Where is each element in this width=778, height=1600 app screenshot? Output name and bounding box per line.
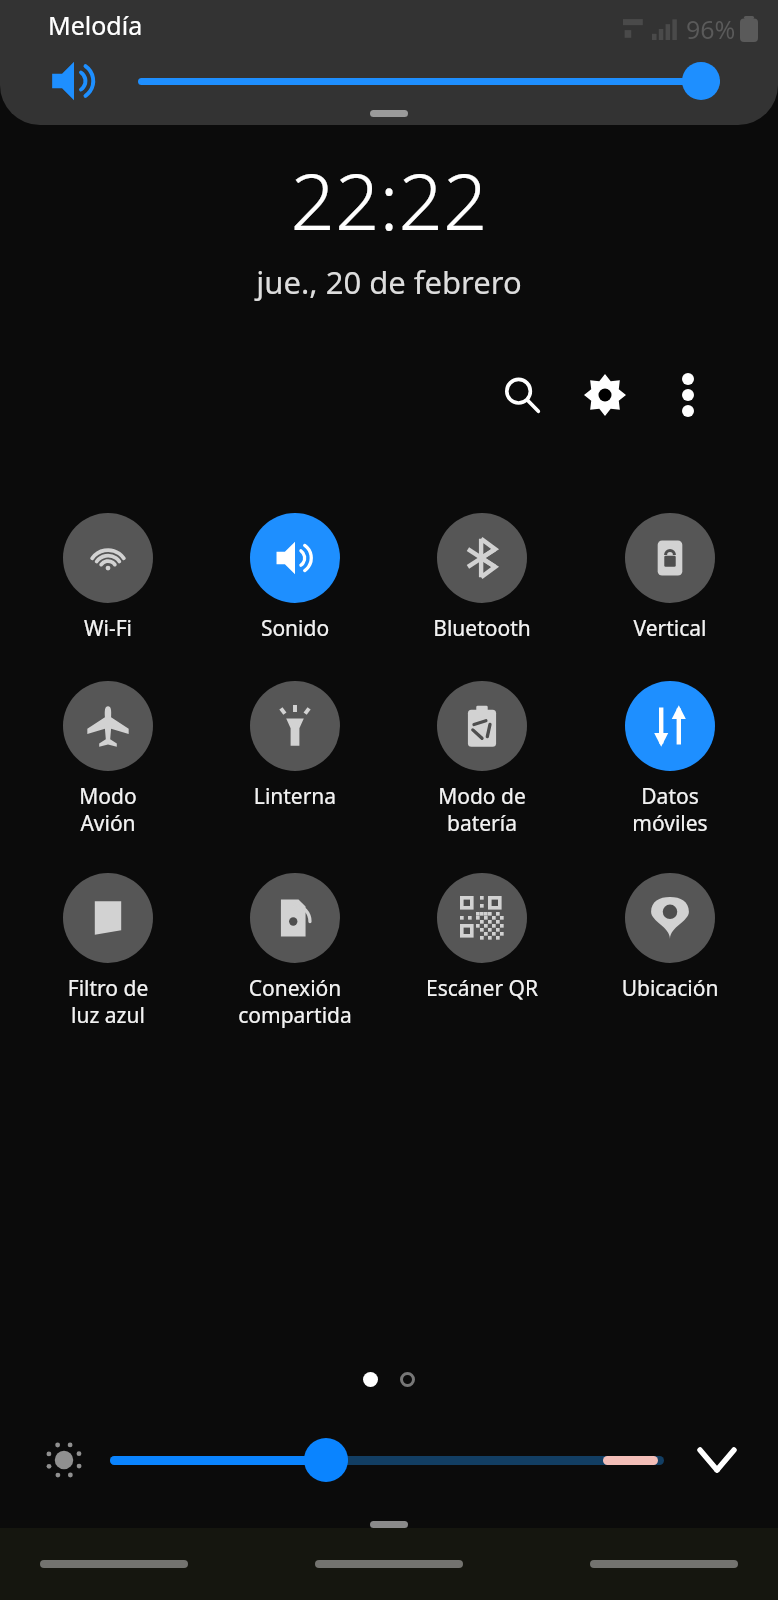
button[interactable]: Bluetooth [407, 513, 557, 643]
staticText: Linterna [220, 782, 370, 811]
button[interactable]: Modo Avión [33, 681, 183, 837]
staticText: Wi-Fi [33, 614, 183, 643]
staticText: jue., 20 de febrero [0, 261, 778, 303]
staticText: Datos móviles [595, 782, 745, 837]
staticText: Escáner QR [407, 974, 557, 1003]
button[interactable]: Settings [575, 365, 635, 425]
button[interactable]: Volume [48, 55, 100, 107]
staticText: Filtro de luz azul [33, 974, 183, 1029]
button[interactable]: More options [658, 365, 718, 425]
button[interactable]: Wi-Fi [33, 513, 183, 643]
button[interactable]: Modo de batería [407, 681, 557, 837]
staticText: 22:22 [0, 147, 778, 253]
staticText: Modo de batería [407, 782, 557, 837]
button[interactable]: Ubicación [595, 873, 745, 1003]
staticText: Sonido [220, 614, 370, 643]
staticText: Bluetooth [407, 614, 557, 643]
button[interactable] [138, 59, 720, 103]
other: Brightness [42, 1438, 86, 1482]
button[interactable]: Conexión compartida [220, 873, 370, 1029]
staticText: Modo Avión [33, 782, 183, 837]
staticText: Conexión compartida [220, 974, 370, 1029]
staticText: 96% [686, 12, 736, 46]
staticText: Vertical [595, 614, 745, 643]
button[interactable]: Sonido [220, 513, 370, 643]
button[interactable]: Vertical [595, 513, 745, 643]
button[interactable]: Linterna [220, 681, 370, 811]
button[interactable] [110, 1437, 664, 1483]
button[interactable]: Search [492, 365, 552, 425]
button[interactable]: Escáner QR [407, 873, 557, 1003]
staticText: Ubicación [595, 974, 745, 1003]
button[interactable]: Filtro de luz azul [33, 873, 183, 1029]
button[interactable]: Datos móviles [595, 681, 745, 837]
button[interactable]: Expand brightness settings [690, 1433, 744, 1487]
staticText: Melodía [48, 8, 143, 42]
